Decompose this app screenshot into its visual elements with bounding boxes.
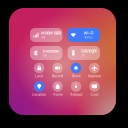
- button[interactable]: Record: [48, 63, 67, 78]
- staticText: Location: [32, 92, 46, 97]
- staticText: Record: [52, 74, 63, 78]
- button[interactable]: Home: [48, 81, 67, 97]
- staticText: Airplane: [88, 74, 101, 78]
- button[interactable]: Hotspot: [67, 81, 85, 97]
- staticText: Home: [83, 35, 92, 39]
- button[interactable]: Lock: [30, 63, 48, 78]
- staticText: Flashlight: [80, 49, 96, 53]
- button[interactable]: Airplane: [85, 63, 104, 78]
- staticText: Mobile data: [41, 31, 61, 35]
- button[interactable]: Location: [30, 81, 48, 97]
- staticText: Wi-Fi: [83, 31, 93, 35]
- staticText: Silent: [71, 74, 80, 78]
- button[interactable]: Cast: [85, 81, 104, 97]
- button[interactable]: Flashlight: [67, 46, 100, 60]
- button[interactable]: Bluetooth: [30, 46, 62, 60]
- staticText: Off: [80, 53, 84, 57]
- staticText: Hotspot: [69, 92, 82, 97]
- staticText: Cast: [90, 92, 98, 97]
- staticText: Home: [53, 92, 63, 97]
- button[interactable]: Mobile data: [30, 28, 62, 42]
- staticText: Lock: [35, 74, 43, 78]
- staticText: Bluetooth: [43, 49, 59, 53]
- staticText: Off: [41, 35, 45, 39]
- button[interactable]: Silent: [67, 63, 85, 78]
- button[interactable]: Wi-Fi: [67, 28, 100, 42]
- staticText: On: [43, 53, 47, 57]
